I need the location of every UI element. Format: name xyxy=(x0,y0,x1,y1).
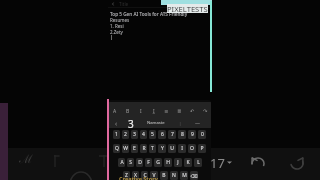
button[interactable]: Format ≣ xyxy=(175,107,183,115)
staticText: L xyxy=(197,159,200,166)
staticText: I xyxy=(140,108,142,115)
button[interactable]: Z xyxy=(123,171,130,180)
staticText: Y xyxy=(161,145,164,152)
button[interactable]: 5 xyxy=(149,130,156,139)
staticText: ↶ xyxy=(190,108,195,114)
staticText: ⌫ xyxy=(190,173,198,179)
button[interactable]: K xyxy=(184,158,192,167)
staticText: 1. Resi xyxy=(110,23,124,29)
button[interactable]: Y xyxy=(158,144,166,153)
staticText: 8 xyxy=(181,131,184,138)
staticText: F xyxy=(147,159,150,166)
staticText: ℳ xyxy=(19,150,33,164)
button[interactable]: 1 xyxy=(113,130,120,139)
button[interactable]: W xyxy=(122,144,129,153)
button[interactable]: R xyxy=(140,144,147,153)
button[interactable]: M xyxy=(180,171,188,180)
button[interactable]: 0 xyxy=(198,130,206,139)
staticText: 17 xyxy=(210,154,225,170)
staticText: Resumes xyxy=(110,17,130,23)
button[interactable]: T xyxy=(149,144,156,153)
staticText: 6 xyxy=(161,131,164,138)
button[interactable]: Font size xyxy=(210,154,232,170)
staticText: X xyxy=(134,172,137,179)
button[interactable]: ⌫ xyxy=(190,171,198,180)
button[interactable]: Namaste xyxy=(147,120,165,126)
staticText: D xyxy=(138,159,142,166)
button[interactable]: I xyxy=(178,144,186,153)
button[interactable]: 8 xyxy=(178,130,186,139)
button[interactable]: E xyxy=(131,144,138,153)
button[interactable]: Format A xyxy=(111,107,119,115)
button[interactable]: H xyxy=(164,158,172,167)
staticText: I xyxy=(181,145,183,152)
button[interactable]: J xyxy=(174,158,182,167)
button[interactable]: G xyxy=(154,158,162,167)
button[interactable]: B xyxy=(160,171,168,180)
button[interactable]: 6 xyxy=(158,130,166,139)
staticText: 3 xyxy=(128,117,134,129)
staticText: 5 xyxy=(151,131,154,138)
button[interactable]: C xyxy=(141,171,148,180)
staticText: | xyxy=(179,121,182,126)
staticText: I̲ xyxy=(153,108,155,115)
staticText: B xyxy=(126,108,130,115)
staticText: U xyxy=(170,145,174,152)
button[interactable]: X xyxy=(132,171,139,180)
button[interactable]: Back xyxy=(106,0,212,7)
button[interactable]: Undo xyxy=(248,152,268,172)
staticText: 4 xyxy=(142,131,145,138)
staticText: ‹ xyxy=(115,119,118,127)
button[interactable]: 3 xyxy=(131,130,138,139)
button[interactable]: 2 xyxy=(122,130,129,139)
staticText: Title xyxy=(119,1,129,7)
button[interactable]: Format I̲ xyxy=(150,107,158,115)
staticText: N xyxy=(172,172,176,179)
button[interactable]: U xyxy=(168,144,176,153)
staticText: W xyxy=(123,145,128,152)
button[interactable]: V xyxy=(150,171,158,180)
staticText: R xyxy=(142,145,146,152)
staticText: A xyxy=(120,159,124,166)
staticText: Top 5 Gen AI Tools for ATS Friendly xyxy=(110,11,188,17)
button[interactable]: Format ↶ xyxy=(188,107,196,115)
button[interactable]: 9 xyxy=(188,130,196,139)
staticText: — xyxy=(195,120,201,127)
button[interactable]: P xyxy=(198,144,206,153)
button[interactable]: Font xyxy=(19,150,33,164)
button[interactable]: Previous xyxy=(112,119,120,127)
staticText: H xyxy=(166,159,170,166)
staticText: ≣ xyxy=(177,108,182,114)
staticText: K xyxy=(186,159,190,166)
button[interactable]: 4 xyxy=(140,130,147,139)
button[interactable]: O xyxy=(188,144,196,153)
staticText: P xyxy=(200,145,204,152)
button[interactable]: S xyxy=(127,158,134,167)
button[interactable]: Format ↷ xyxy=(201,107,209,115)
staticText: 3 xyxy=(133,131,136,138)
staticText: J xyxy=(177,159,179,166)
staticText: 0 xyxy=(201,131,204,138)
staticText: 2.Zety xyxy=(110,29,123,35)
staticText: O xyxy=(190,145,194,152)
staticText: Creative Story xyxy=(119,175,158,180)
staticText: Q xyxy=(115,145,119,152)
staticText: T xyxy=(151,145,154,152)
button[interactable]: A xyxy=(118,158,125,167)
button[interactable]: Redo xyxy=(287,152,307,172)
staticText: B xyxy=(162,172,166,179)
button[interactable]: Format B xyxy=(124,107,132,115)
button[interactable]: F xyxy=(145,158,152,167)
button[interactable]: Format I xyxy=(137,107,145,115)
staticText: A xyxy=(113,108,117,115)
staticText: S xyxy=(129,159,132,166)
staticText: 2 xyxy=(124,131,127,138)
button[interactable]: D xyxy=(136,158,143,167)
button[interactable]: 7 xyxy=(168,130,176,139)
button[interactable]: Q xyxy=(113,144,120,153)
staticText: Namaste xyxy=(147,120,165,126)
button[interactable]: N xyxy=(170,171,178,180)
button[interactable]: L xyxy=(194,158,202,167)
button[interactable]: Format ≡ xyxy=(162,107,170,115)
staticText: PIXELTESTS xyxy=(167,4,208,13)
